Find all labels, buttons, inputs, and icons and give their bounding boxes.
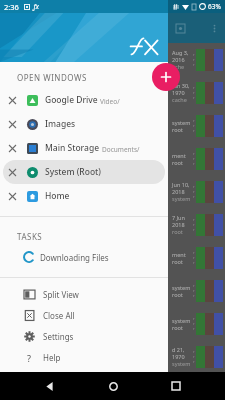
button[interactable]: Close Main Storage	[3, 139, 21, 157]
staticText: r	[193, 222, 195, 227]
staticText: system	[172, 195, 191, 202]
staticText: Video/	[100, 97, 120, 106]
staticText: r	[193, 316, 195, 321]
button[interactable]: Downloading Files	[24, 247, 168, 267]
staticText: Help	[43, 352, 61, 363]
button[interactable]: Close Images	[3, 115, 21, 133]
staticText: r	[193, 90, 195, 95]
button[interactable]: Close Google Drive	[3, 91, 21, 109]
staticText: Close All	[43, 310, 75, 321]
staticText: r	[193, 255, 195, 260]
button[interactable]: Close Home	[3, 184, 165, 208]
staticText: r	[193, 161, 195, 166]
staticText: OPEN WINDOWS	[17, 72, 87, 83]
staticText: r	[193, 189, 195, 194]
staticText: root	[172, 324, 183, 331]
staticText: TASKS	[17, 231, 43, 242]
staticText: 7 Jun	[172, 214, 185, 221]
staticText: r	[193, 128, 195, 133]
button[interactable]: Settings	[24, 326, 168, 347]
staticText: system	[172, 360, 191, 367]
staticText: r	[193, 354, 195, 359]
staticText: cache	[172, 96, 187, 103]
staticText: system	[172, 284, 191, 291]
staticText: r	[193, 288, 195, 293]
staticText: r	[193, 95, 195, 100]
button[interactable]: Split View	[24, 284, 168, 305]
staticText: r	[193, 250, 195, 255]
staticText: 1970	[172, 353, 185, 360]
staticText: Home	[45, 190, 70, 202]
staticText: Split View	[43, 289, 79, 300]
staticText: r	[193, 151, 195, 156]
staticText: ƒx	[33, 2, 39, 11]
staticText: root	[172, 126, 183, 133]
button[interactable]: Close System (Root)	[3, 163, 21, 181]
staticText: Jun 10,	[172, 181, 190, 188]
button[interactable]: Close Main Storage	[3, 136, 165, 160]
staticText: r	[193, 227, 195, 232]
staticText: r	[193, 260, 195, 265]
staticText: r	[193, 85, 195, 90]
staticText: Main Storage	[45, 142, 100, 154]
staticText: system	[172, 317, 191, 324]
button[interactable]: Home	[99, 372, 127, 400]
staticText: 2016	[172, 56, 185, 63]
staticText: r	[193, 359, 195, 364]
staticText: r	[193, 156, 195, 161]
button[interactable]: Close System (Root)	[3, 160, 165, 184]
staticText: Downloading Files	[40, 252, 109, 263]
staticText: r	[193, 62, 195, 67]
staticText: r	[193, 349, 195, 354]
staticText: root	[172, 291, 183, 298]
staticText: Images	[45, 118, 76, 130]
button[interactable]: Add	[152, 63, 180, 91]
staticText: 2018	[172, 188, 185, 195]
button[interactable]: Recent apps	[162, 372, 190, 400]
button[interactable]: Close Google Drive	[3, 88, 165, 112]
staticText: r	[193, 52, 195, 57]
button[interactable]: ?	[24, 347, 168, 368]
staticText: r	[193, 321, 195, 326]
staticText: r	[193, 326, 195, 331]
staticText: Documents/	[102, 145, 140, 154]
staticText: Google Drive	[45, 94, 98, 106]
button[interactable]: Close Home	[3, 187, 21, 205]
staticText: d 21,	[172, 346, 185, 353]
staticText: root	[172, 258, 183, 265]
button[interactable]: Back	[35, 372, 63, 400]
staticText: 1970	[172, 89, 185, 96]
staticText: 2018	[172, 221, 185, 228]
staticText: r	[193, 184, 195, 189]
staticText: ?	[27, 352, 32, 363]
staticText: Settings	[43, 331, 74, 342]
staticText: root	[172, 159, 183, 166]
staticText: r	[193, 217, 195, 222]
staticText: 63%	[208, 2, 221, 11]
staticText: ache	[172, 63, 185, 70]
staticText: ment	[172, 251, 186, 258]
staticText: root	[172, 228, 183, 235]
staticText: System (Root)	[45, 166, 102, 178]
staticText: r	[193, 118, 195, 123]
staticText: system	[172, 119, 191, 126]
button[interactable]: Close All	[24, 305, 168, 326]
staticText: r	[193, 283, 195, 288]
staticText: Aug 3,	[172, 49, 189, 56]
staticText: 2:36	[4, 2, 19, 12]
staticText: ment	[172, 152, 186, 159]
staticText: Jun 30,	[172, 82, 190, 89]
button[interactable]: Close Images	[3, 112, 165, 136]
staticText: r	[193, 57, 195, 62]
staticText: r	[193, 194, 195, 199]
staticText: r	[193, 293, 195, 298]
staticText: r	[193, 123, 195, 128]
